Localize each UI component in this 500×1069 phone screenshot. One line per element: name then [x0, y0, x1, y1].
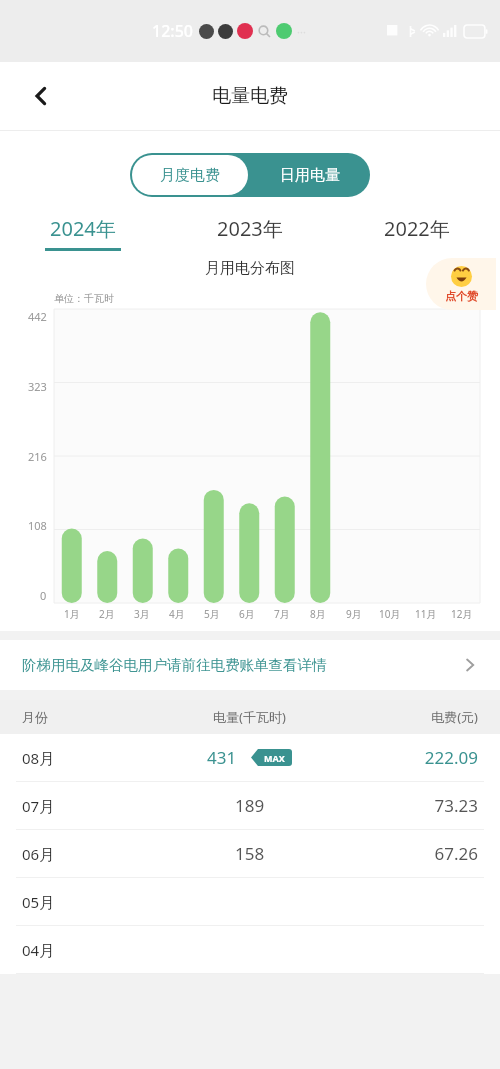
staticText: 5月 [204, 607, 220, 621]
button[interactable]: 2024年 [0, 215, 166, 251]
button[interactable]: 月度电费 [132, 155, 248, 195]
staticText: 2024年 [50, 215, 116, 242]
button[interactable]: 日用电量 [250, 153, 370, 197]
staticText: 电量电费 [212, 84, 288, 108]
staticText: 9月 [346, 607, 362, 621]
staticText: 05月 [22, 892, 164, 912]
staticText: 1月 [64, 607, 80, 621]
staticText: MAX [264, 752, 285, 764]
button[interactable]: Back [22, 77, 60, 115]
button[interactable]: 08月 [0, 734, 500, 781]
button[interactable]: 2022年 [333, 215, 500, 251]
staticText: 12:50 [152, 20, 193, 42]
staticText: 电费(元) [335, 708, 478, 726]
staticText: 阶梯用电及峰谷电用户请前往电费账单查看详情 [22, 656, 462, 674]
staticText: 04月 [22, 940, 164, 960]
staticText: 431 [207, 746, 237, 769]
staticText: 日用电量 [280, 166, 340, 185]
staticText: 月份 [22, 709, 164, 725]
staticText: 222.09 [335, 746, 478, 769]
staticText: 442 [28, 309, 47, 324]
staticText: 108 [28, 518, 47, 533]
staticText: 电量(千瓦时) [164, 708, 335, 726]
staticText: 08月 [22, 748, 164, 768]
staticText: 2022年 [384, 215, 450, 242]
staticText: 2023年 [217, 215, 283, 242]
staticText: 323 [28, 379, 47, 394]
staticText: 6月 [239, 607, 255, 621]
button[interactable]: 07月 [0, 782, 500, 829]
staticText: 3月 [134, 607, 150, 621]
staticText: 11月 [415, 607, 437, 621]
button[interactable]: 阶梯用电及峰谷电用户请前往电费账单查看详情 [0, 640, 500, 690]
staticText: 216 [28, 449, 47, 464]
button[interactable]: 06月 [0, 830, 500, 877]
staticText: 单位：千瓦时 [54, 292, 114, 305]
button[interactable]: 2023年 [166, 215, 333, 251]
staticText: 07月 [22, 796, 164, 816]
button[interactable]: Like [426, 258, 496, 310]
staticText: 4月 [169, 607, 185, 621]
staticText: 189 [235, 794, 265, 817]
staticText: 158 [235, 842, 265, 865]
staticText: 2月 [99, 607, 115, 621]
button[interactable]: 05月 [0, 878, 500, 925]
staticText: 67.26 [335, 842, 478, 865]
staticText: 10月 [379, 607, 401, 621]
staticText: 0 [40, 588, 47, 603]
staticText: 7月 [274, 607, 290, 621]
staticText: 8月 [310, 607, 326, 621]
staticText: 点个赞 [445, 289, 478, 303]
button[interactable]: 04月 [0, 926, 500, 973]
staticText: 月度电费 [160, 166, 220, 185]
staticText: 12月 [451, 607, 473, 621]
staticText: 73.23 [335, 794, 478, 817]
staticText: 06月 [22, 844, 164, 864]
staticText: 月用电分布图 [0, 259, 500, 278]
